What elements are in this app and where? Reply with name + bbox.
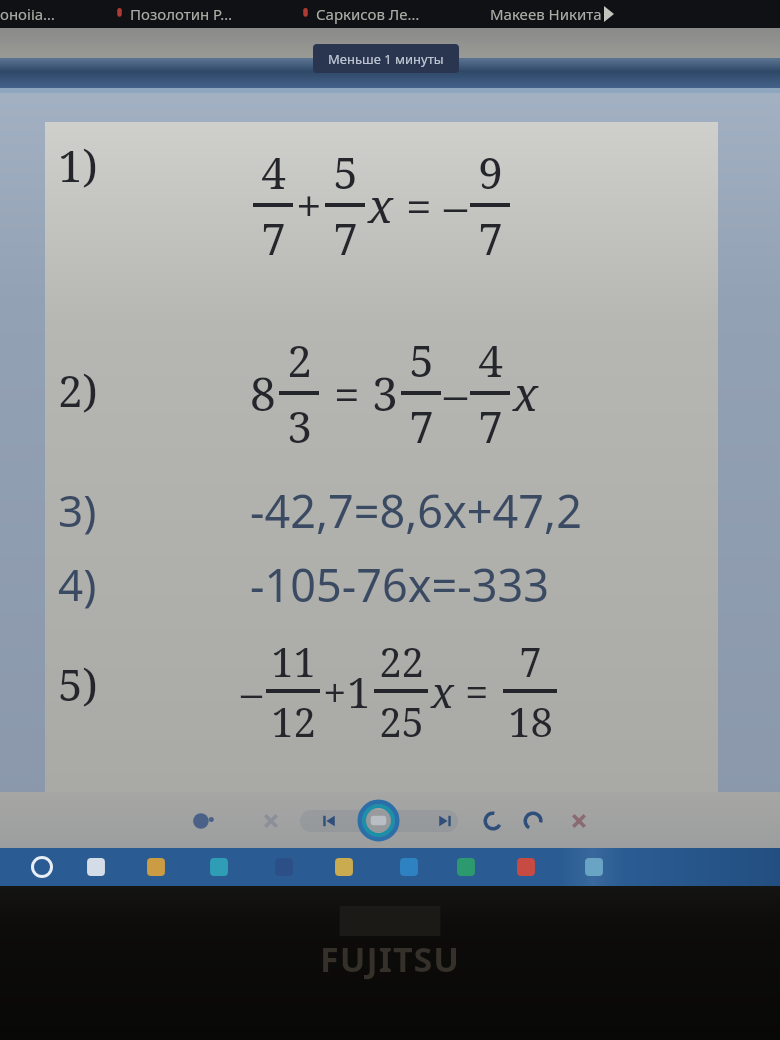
staticText: Меньше 1 минуты (328, 50, 444, 68)
button[interactable]: File explorer (142, 853, 170, 881)
staticText: 7 (261, 208, 286, 268)
button[interactable]: Меньше 1 минуты (313, 44, 459, 73)
staticText: 4 (478, 330, 503, 390)
button[interactable]: Chrome (512, 853, 540, 881)
button[interactable]: Erase (258, 808, 284, 834)
button[interactable]: App (580, 853, 608, 881)
staticText: 7 (478, 396, 503, 456)
staticText: 12 (271, 694, 316, 748)
button[interactable]: Саркисов Ле… (301, 4, 420, 24)
button[interactable]: оноiіа… (0, 4, 55, 24)
staticText: + (296, 174, 322, 237)
button[interactable]: Ink tool (190, 808, 216, 834)
button[interactable]: Edge (395, 853, 423, 881)
staticText: 5 (333, 142, 358, 202)
staticText: – (444, 174, 467, 237)
button[interactable]: Close (566, 808, 592, 834)
staticText: 2) (58, 360, 98, 420)
staticText: – (444, 362, 467, 425)
staticText: 9 (478, 142, 503, 202)
staticText: x (368, 174, 394, 237)
staticText: 8 (250, 362, 276, 425)
button[interactable]: Позолотин Р… (115, 4, 233, 24)
button[interactable]: Shop (330, 853, 358, 881)
staticText: 11 (271, 634, 316, 688)
staticText: = (322, 362, 372, 425)
staticText: Саркисов Ле… (316, 4, 420, 24)
button[interactable]: Макеев Никита (490, 4, 602, 24)
staticText: 7 (478, 208, 503, 268)
button[interactable]: Play (359, 801, 398, 840)
staticText: 4 (261, 142, 286, 202)
staticText: + (323, 663, 347, 720)
staticText: Позолотин Р… (130, 4, 233, 24)
button[interactable]: Mail (205, 853, 233, 881)
staticText: 5) (58, 654, 98, 714)
staticText: 7 (409, 396, 434, 456)
staticText: 18 (508, 694, 553, 748)
button[interactable]: Store (270, 853, 298, 881)
button[interactable]: Next (432, 808, 458, 834)
button[interactable]: Redo (520, 808, 546, 834)
staticText: -105-76x=-333 (250, 554, 549, 615)
staticText: x (431, 663, 454, 720)
staticText: x (513, 362, 539, 425)
staticText: 4) (58, 554, 97, 614)
button[interactable]: Meeting (452, 853, 480, 881)
staticText: 3) (58, 480, 97, 540)
staticText: = (454, 663, 500, 720)
staticText: оноiіа… (0, 4, 55, 24)
staticText: 3 (287, 396, 312, 456)
staticText: 7 (519, 634, 542, 688)
staticText: 22 (379, 634, 424, 688)
staticText: FUJITSU (320, 936, 460, 982)
staticText: 25 (379, 694, 424, 748)
staticText: 5 (409, 330, 434, 390)
staticText: 1 (347, 663, 371, 720)
staticText: – (241, 663, 263, 720)
staticText: = (394, 174, 444, 237)
staticText: 2 (287, 330, 312, 390)
staticText: -42,7=8,6x+47,2 (250, 480, 582, 541)
staticText: 7 (333, 208, 358, 268)
staticText: 3 (372, 362, 398, 425)
button[interactable]: Undo (480, 808, 506, 834)
staticText: 1) (58, 135, 98, 195)
staticText: Макеев Никита (490, 4, 602, 24)
button[interactable]: Task view (82, 853, 110, 881)
button[interactable]: Search (28, 853, 56, 881)
button[interactable]: Previous (316, 808, 342, 834)
